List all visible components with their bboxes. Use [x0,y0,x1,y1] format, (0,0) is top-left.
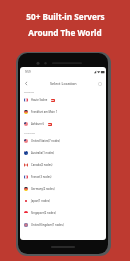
staticText: United States(7 nodes) [31,139,61,143]
button[interactable]: Singapore(2 nodes) [20,207,106,219]
staticText: Select Location [50,81,77,86]
button[interactable]: Back [22,79,31,88]
button[interactable]: Info [95,79,104,88]
staticText: 50+ Built-in Servers [26,11,105,22]
staticText: Featured [24,90,35,93]
staticText: United Kingdom(1 nodes) [31,223,64,227]
button[interactable]: Frankfurt am Main 1 [20,106,106,118]
button[interactable]: Germany(2 nodes) [20,183,106,195]
staticText: Germany(2 nodes) [31,187,55,191]
button[interactable]: United Kingdom(1 nodes) [20,219,106,231]
staticText: Around The World [28,27,102,38]
button[interactable]: Japan(1 nodes) [20,195,106,207]
button[interactable]: Canada(2 nodes) [20,159,106,171]
staticText: Countries [24,131,35,134]
button[interactable]: Australia(1 nodes) [20,147,106,159]
staticText: 9:59 [25,70,31,74]
button[interactable]: Haute Saône [20,94,106,106]
button[interactable]: France(3 nodes) [20,171,106,183]
staticText: Singapore(2 nodes) [31,211,56,215]
button[interactable]: Ashburn 6 [20,118,106,130]
staticText: Frankfurt am Main 1 [31,110,58,114]
staticText: Canada(2 nodes) [31,163,53,167]
staticText: PRO [48,123,52,126]
staticText: Japan(1 nodes) [31,199,50,203]
staticText: Ashburn 6 [31,122,45,126]
button[interactable]: United States(7 nodes) [20,135,106,147]
staticText: PRO [51,99,55,102]
staticText: France(3 nodes) [31,175,52,179]
staticText: Haute Saône [31,98,48,102]
staticText: Australia(1 nodes) [31,151,55,155]
